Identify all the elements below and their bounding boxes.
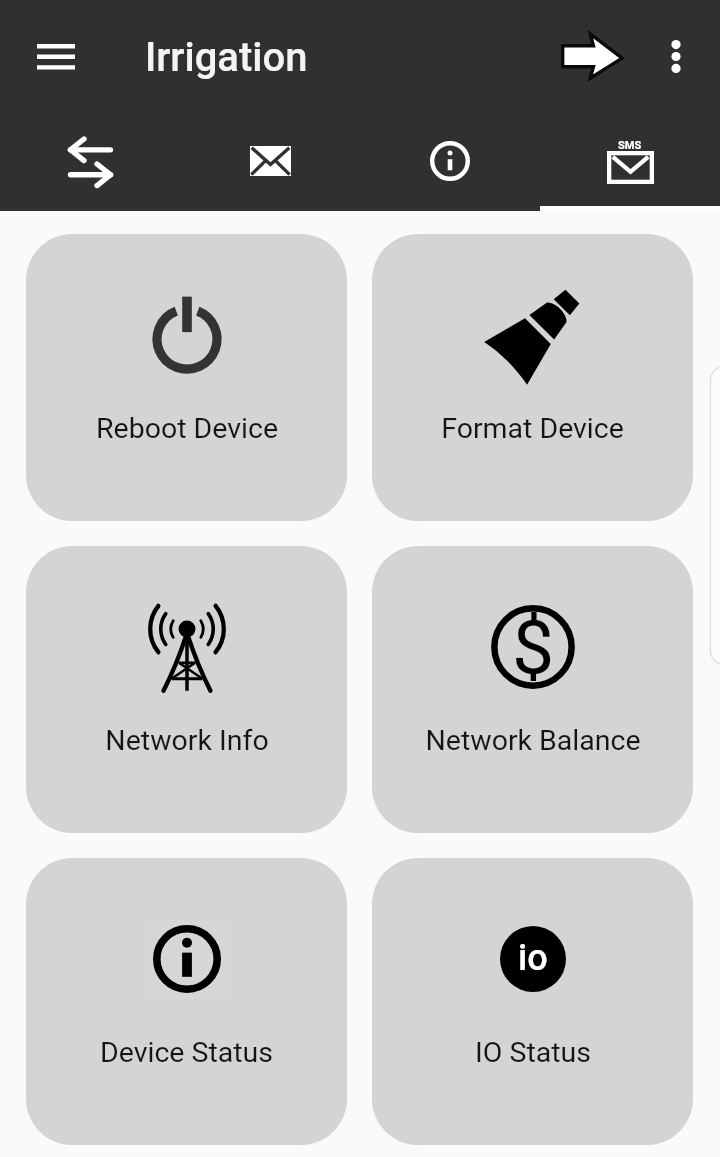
staticText: io (518, 937, 548, 979)
button[interactable]: Info (360, 111, 540, 211)
staticText: Reboot Device (96, 412, 278, 445)
staticText: Network Balance (425, 724, 641, 757)
button[interactable]: Reboot Device (26, 234, 347, 521)
button[interactable]: Transfer (0, 111, 180, 211)
button[interactable]: $ (372, 546, 693, 833)
staticText: Network Info (105, 724, 269, 757)
button[interactable]: SMS (540, 111, 720, 211)
button[interactable]: Device Status (26, 858, 347, 1145)
button[interactable]: More options (644, 17, 708, 96)
staticText: Format Device (441, 412, 624, 445)
button[interactable]: Mail (180, 111, 360, 211)
button[interactable]: Format Device (372, 234, 693, 521)
button[interactable]: Send (552, 16, 633, 96)
button[interactable]: Network Info (26, 546, 347, 833)
staticText: $ (512, 603, 555, 691)
staticText: Device Status (100, 1036, 273, 1069)
button[interactable]: io (372, 858, 693, 1145)
staticText: IO Status (475, 1036, 591, 1069)
staticText: Irrigation (145, 34, 308, 81)
staticText: SMS (618, 139, 642, 152)
button[interactable]: Menu (16, 17, 96, 96)
